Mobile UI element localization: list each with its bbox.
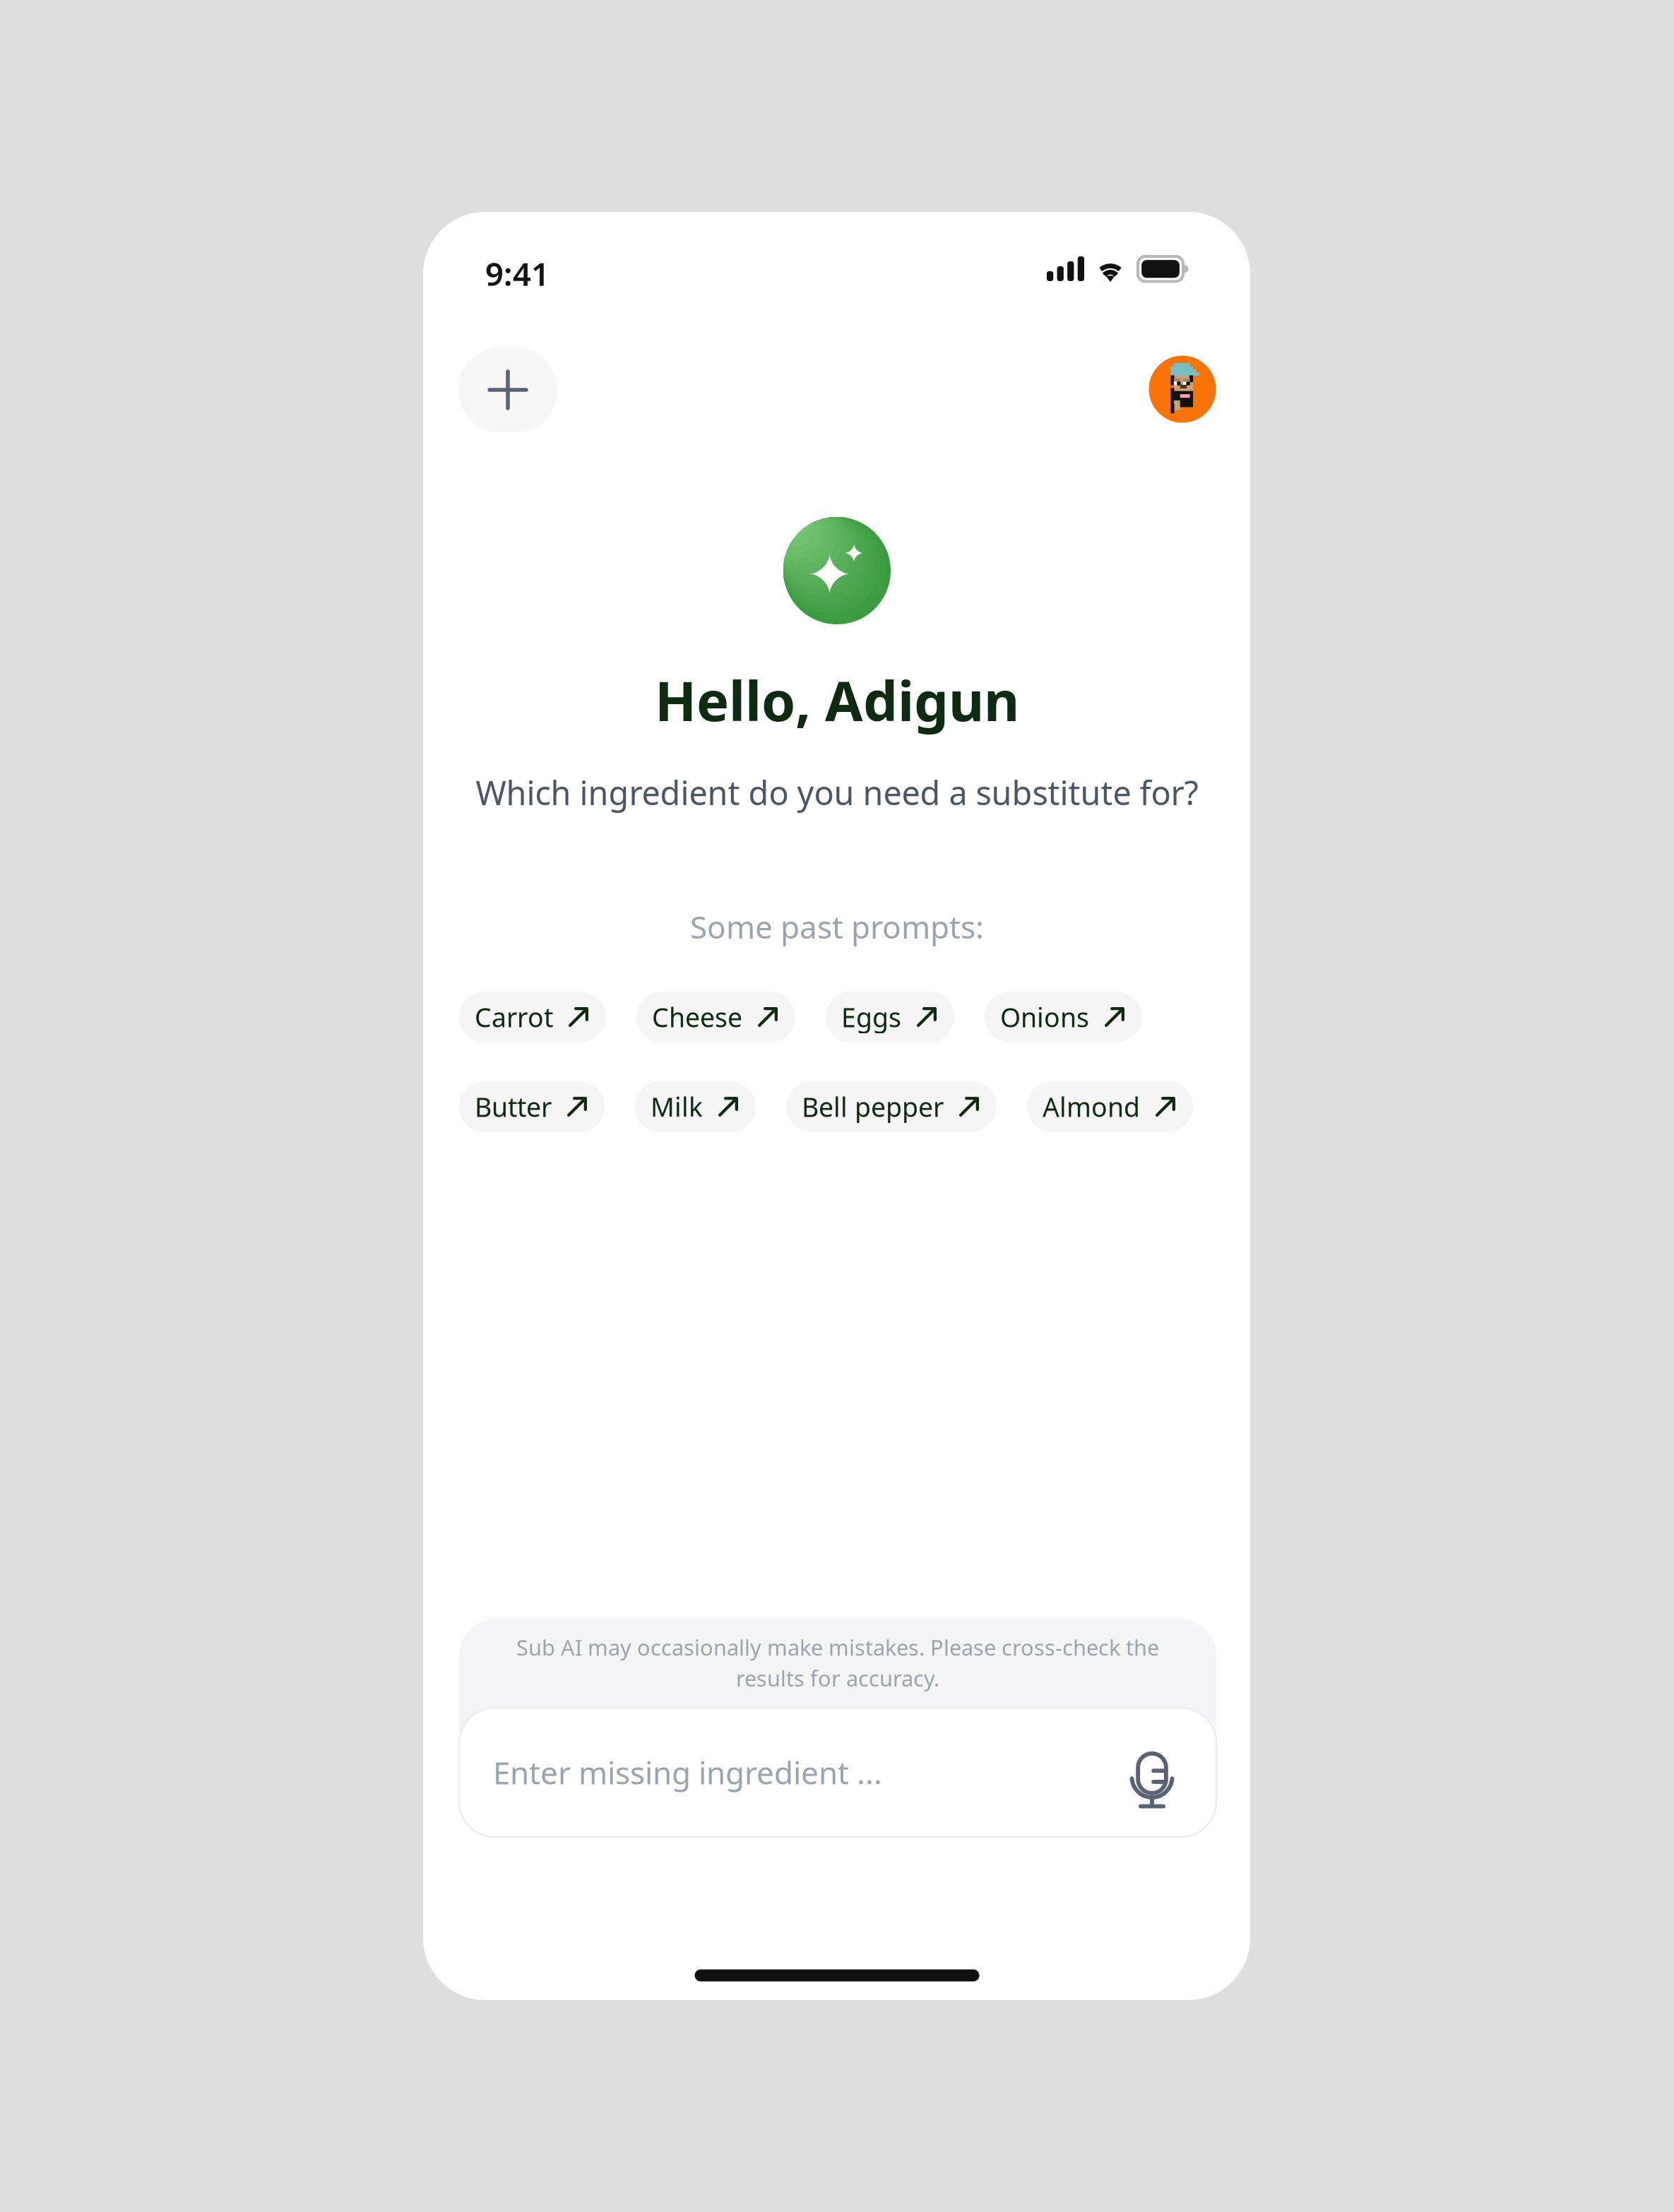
staticText: results for accuracy. — [736, 1664, 939, 1692]
staticText: Cheese — [652, 999, 742, 1035]
staticText: Which ingredient do you need a substitut… — [476, 771, 1198, 814]
button[interactable]: Carrot — [459, 992, 606, 1042]
button[interactable]: Almond — [1027, 1081, 1193, 1132]
button[interactable]: Bell pepper — [786, 1081, 997, 1132]
button[interactable]: Voice input — [1130, 1753, 1174, 1808]
button[interactable]: New chat — [459, 348, 557, 432]
staticText: Onions — [1000, 999, 1089, 1035]
staticText: Bell pepper — [802, 1089, 944, 1124]
staticText: Hello, Adigun — [655, 664, 1019, 736]
staticText: Some past prompts: — [690, 906, 984, 947]
staticText: Milk — [651, 1089, 703, 1124]
staticText: Carrot — [475, 999, 553, 1035]
button[interactable]: Butter — [459, 1081, 605, 1132]
staticText: Almond — [1043, 1089, 1140, 1124]
staticText: 9:41 — [485, 252, 550, 295]
button[interactable]: Onions — [985, 992, 1142, 1042]
staticText: Enter missing ingredient ... — [493, 1752, 882, 1793]
staticText: Butter — [475, 1089, 552, 1124]
button[interactable]: Profile — [1149, 356, 1216, 423]
button[interactable]: Eggs — [826, 992, 954, 1042]
staticText: Eggs — [841, 999, 901, 1035]
staticText: Sub AI may occasionally make mistakes. P… — [516, 1633, 1159, 1662]
button[interactable]: Milk — [635, 1081, 756, 1132]
button[interactable]: Cheese — [636, 992, 795, 1042]
